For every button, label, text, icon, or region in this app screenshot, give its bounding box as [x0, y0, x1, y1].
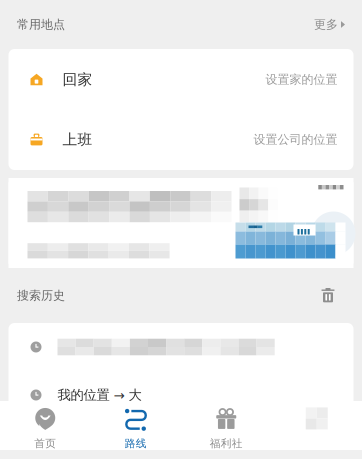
button[interactable]: 清空搜索历史 [315, 282, 341, 308]
staticText: 福利社 [210, 437, 243, 450]
button[interactable]: 我的位置 → 大 [8, 371, 353, 419]
button[interactable]: 回家 [8, 49, 353, 109]
staticText: 回家 [62, 70, 92, 88]
staticText: 搜索历史 [17, 288, 65, 303]
staticText: 首页 [34, 437, 56, 450]
staticText: 设置公司的位置 [253, 132, 337, 147]
button[interactable] [271, 401, 362, 450]
button[interactable]: 更多 [300, 10, 345, 39]
button[interactable] [8, 178, 353, 268]
staticText: 更多 [314, 17, 338, 32]
button[interactable]: 上班 [8, 109, 353, 169]
staticText: 路线 [125, 437, 147, 450]
staticText: 设置家的位置 [265, 72, 337, 87]
staticText: 常用地点 [17, 17, 65, 32]
button[interactable]: 路线 [90, 401, 181, 450]
staticText: 我的位置 → 大 [57, 387, 141, 403]
button[interactable]: 福利社 [181, 401, 271, 450]
button[interactable] [8, 323, 353, 371]
button[interactable]: 首页 [0, 401, 90, 450]
staticText: 上班 [62, 130, 92, 148]
